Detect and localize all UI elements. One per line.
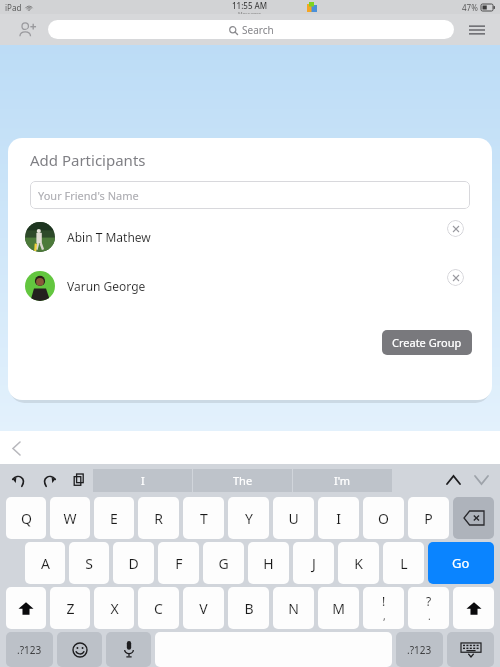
button[interactable]: R	[138, 497, 179, 539]
button[interactable]: S	[69, 542, 109, 584]
button[interactable]: Varun George	[8, 269, 492, 303]
button[interactable]: I'm	[293, 469, 392, 492]
button[interactable]: Add contact	[14, 17, 40, 43]
button[interactable]: A	[25, 542, 65, 584]
button[interactable]: Menu	[464, 17, 490, 43]
button[interactable]: J	[293, 542, 334, 584]
button[interactable]: G	[203, 542, 244, 584]
staticText: E	[110, 509, 118, 528]
staticText: J	[312, 554, 316, 573]
staticText: W	[63, 509, 77, 528]
staticText: P	[424, 509, 433, 528]
button[interactable]: E	[94, 497, 134, 539]
button[interactable]: Emoji	[57, 632, 102, 667]
staticText: D	[128, 554, 139, 573]
staticText: The	[233, 473, 253, 488]
button[interactable]: Abin T Mathew	[8, 220, 492, 254]
button[interactable]: Redo	[38, 469, 60, 491]
button[interactable]: P	[408, 497, 449, 539]
button[interactable]: Backspace	[453, 497, 494, 539]
button[interactable]: O	[363, 497, 404, 539]
staticText: .	[428, 609, 431, 623]
staticText: Search	[242, 23, 274, 37]
button[interactable]: Z	[50, 587, 90, 629]
staticText: I	[141, 473, 145, 488]
staticText: Q	[21, 509, 32, 528]
button[interactable]: Y	[228, 497, 269, 539]
button[interactable]: Paste	[68, 469, 90, 491]
staticText: Go	[452, 554, 470, 572]
staticText: .?123	[17, 643, 42, 657]
staticText: Create Group	[392, 335, 462, 350]
button[interactable]: Q	[6, 497, 46, 539]
button[interactable]: C	[138, 587, 179, 629]
staticText: Abin T Mathew	[67, 229, 151, 245]
staticText: !	[382, 593, 386, 609]
staticText: Add Participants	[30, 150, 146, 170]
staticText: .?123	[407, 643, 432, 657]
button[interactable]: I	[93, 469, 192, 492]
staticText: H	[263, 554, 274, 573]
button[interactable]: Dictation	[106, 632, 151, 667]
staticText: O	[378, 509, 389, 528]
staticText: T	[200, 509, 208, 528]
button[interactable]: U	[273, 497, 314, 539]
button[interactable]: M	[318, 587, 359, 629]
button[interactable]: Create Group	[382, 330, 472, 355]
staticText: U	[288, 509, 299, 528]
staticText: F	[175, 554, 183, 573]
staticText: G	[218, 554, 229, 573]
staticText: ,	[383, 609, 386, 623]
staticText: L	[400, 554, 408, 573]
button[interactable]: !	[363, 587, 404, 629]
button[interactable]: K	[338, 542, 379, 584]
staticText: Messages	[238, 11, 262, 14]
staticText: X	[110, 599, 119, 618]
button[interactable]: N	[273, 587, 314, 629]
button[interactable]: L	[383, 542, 424, 584]
staticText: Your Friend's Name	[38, 188, 139, 203]
button[interactable]: X	[94, 587, 134, 629]
button[interactable]: Previous	[442, 469, 464, 491]
button[interactable]: .?123	[6, 632, 53, 667]
button[interactable]: Remove Varun George	[447, 269, 464, 286]
staticText: A	[41, 554, 50, 573]
staticText: Y	[245, 509, 253, 528]
staticText: C	[154, 599, 163, 618]
button[interactable]: T	[183, 497, 224, 539]
button[interactable]: Hide keyboard	[447, 632, 494, 667]
staticText: M	[332, 599, 345, 618]
button[interactable]: I	[318, 497, 359, 539]
staticText: I	[336, 509, 341, 528]
button[interactable]: W	[50, 497, 90, 539]
button[interactable]: Remove Abin T Mathew	[447, 220, 464, 237]
button[interactable]: .?123	[396, 632, 443, 667]
button[interactable]: Back	[4, 436, 28, 460]
button[interactable]: ?	[408, 587, 449, 629]
staticText: iPad	[5, 2, 22, 13]
button[interactable]: Search	[48, 20, 454, 39]
staticText: ?	[426, 593, 432, 609]
button[interactable]: B	[228, 587, 269, 629]
button[interactable]: Your Friend's Name	[30, 181, 470, 209]
staticText: 47%	[462, 2, 478, 13]
staticText: N	[288, 599, 299, 618]
button[interactable]: Go	[428, 542, 494, 584]
button[interactable]: D	[113, 542, 154, 584]
button[interactable]: The	[193, 469, 292, 492]
button[interactable]: Next	[470, 469, 492, 491]
staticText: B	[244, 599, 254, 618]
button[interactable]: H	[248, 542, 289, 584]
staticText: K	[354, 554, 363, 573]
staticText: R	[154, 509, 163, 528]
staticText: I'm	[334, 473, 351, 488]
staticText: V	[199, 599, 208, 618]
staticText: Z	[66, 599, 75, 618]
staticText: S	[85, 554, 93, 573]
button[interactable]: V	[183, 587, 224, 629]
button[interactable]: Shift	[6, 587, 46, 629]
button[interactable]: Shift	[453, 587, 494, 629]
button[interactable]: Undo	[8, 469, 30, 491]
button[interactable]: F	[158, 542, 199, 584]
